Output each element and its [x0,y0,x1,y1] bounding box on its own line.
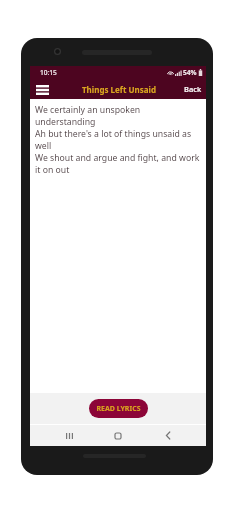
staticText: 54% [183,68,197,77]
button[interactable]: Back [154,425,182,446]
button[interactable]: Open navigation menu [30,79,54,99]
staticText: Back [184,84,202,94]
button[interactable]: Recent apps [55,425,83,446]
button[interactable]: Back [179,79,206,99]
staticText: READ LYRICS [96,404,141,414]
staticText: Things Left Unsaid [82,84,156,95]
button[interactable]: Home [104,425,132,446]
staticText: 10:15 [40,68,57,77]
staticText: We certainly an unspoken understanding A… [35,104,201,176]
button[interactable]: READ LYRICS [89,399,148,418]
